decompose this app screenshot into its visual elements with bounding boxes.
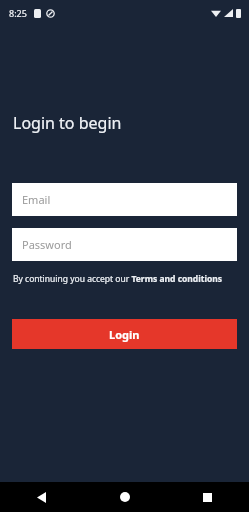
- staticText: Login to begin: [13, 112, 122, 134]
- staticText: By continuing you accept our Terms and c…: [13, 273, 223, 285]
- staticText: Login: [109, 327, 140, 342]
- button[interactable]: Home: [83, 482, 166, 512]
- button[interactable]: Recent apps: [166, 482, 249, 512]
- staticText: 8:25: [9, 7, 27, 19]
- button[interactable]: By continuing you accept our Terms and c…: [13, 273, 223, 285]
- button[interactable]: Password: [12, 228, 237, 261]
- staticText: Email: [22, 192, 51, 207]
- button[interactable]: Email: [12, 183, 237, 216]
- button[interactable]: Login: [12, 319, 237, 349]
- staticText: Password: [22, 237, 72, 252]
- button[interactable]: Back: [0, 482, 83, 512]
